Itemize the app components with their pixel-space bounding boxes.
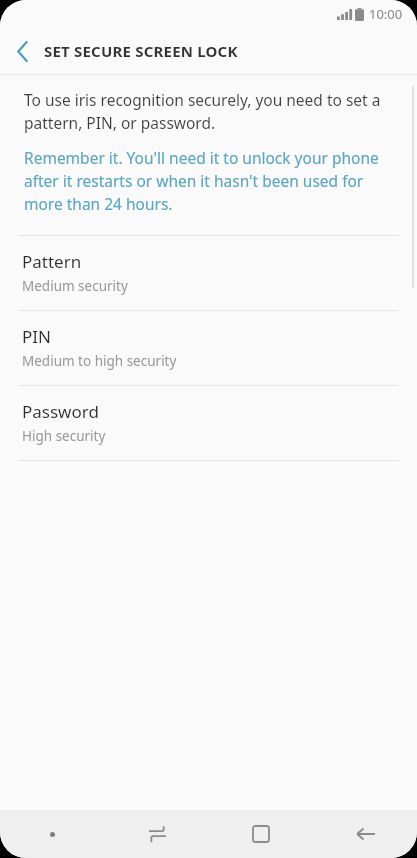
staticText: Medium security (22, 277, 128, 295)
staticText: Medium to high security (22, 352, 177, 370)
button[interactable]: Recent apps (105, 810, 209, 858)
button[interactable]: PIN (0, 311, 417, 385)
button[interactable]: Pattern (0, 236, 417, 310)
button[interactable]: Home (209, 810, 313, 858)
button[interactable]: Back (313, 810, 417, 858)
staticText: Password (22, 400, 99, 423)
staticText: To use iris recognition securely, you ne… (24, 89, 389, 134)
staticText: PIN (22, 325, 51, 348)
staticText: High security (22, 427, 106, 445)
staticText: Remember it. You'll need it to unlock yo… (24, 147, 387, 215)
staticText: SET SECURE SCREEN LOCK (44, 41, 238, 61)
staticText: Pattern (22, 250, 82, 273)
button[interactable]: Password (0, 386, 417, 460)
staticText: 10:00 (369, 5, 403, 23)
button[interactable]: Navigate up (0, 29, 44, 73)
button[interactable]: Menu indicator (0, 810, 105, 858)
